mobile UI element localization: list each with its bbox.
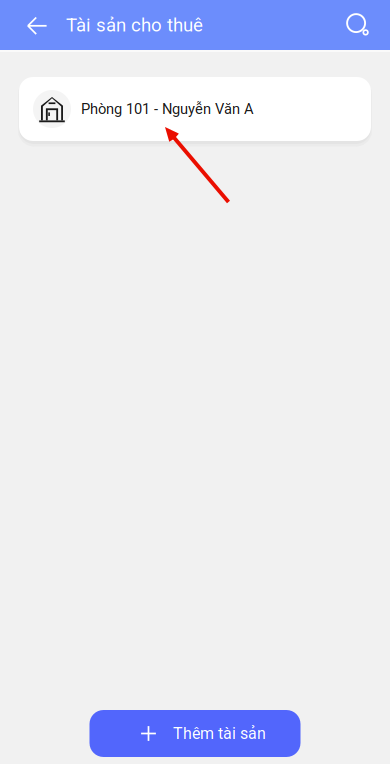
button[interactable]: Search — [334, 0, 382, 50]
button[interactable]: Back — [0, 0, 52, 50]
staticText: Tài sản cho thuê — [66, 14, 203, 36]
staticText: Phòng 101 - Nguyễn Văn A — [81, 100, 254, 118]
button[interactable]: Phòng 101 - Nguyễn Văn A — [19, 77, 371, 141]
button[interactable]: Thêm tài sản — [89, 710, 300, 757]
staticText: Thêm tài sản — [173, 724, 266, 743]
